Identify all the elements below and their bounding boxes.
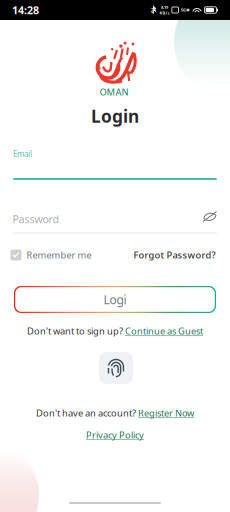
button[interactable]: Forgot Password? [133, 249, 215, 261]
button[interactable]: Continue as Guest [125, 325, 203, 337]
button[interactable]: Logi [14, 286, 216, 313]
button[interactable]: Privacy Policy [86, 429, 144, 441]
staticText: Logi [103, 291, 126, 307]
staticText: Remember me [26, 249, 91, 261]
staticText: OMAN [99, 86, 128, 98]
staticText: Continue as Guest [125, 325, 203, 337]
staticText: 14:28 [12, 3, 39, 17]
button[interactable]: Remember me [10, 249, 91, 261]
staticText: 5G [181, 7, 186, 13]
staticText: Register Now [138, 407, 194, 419]
button[interactable]: Sign in with fingerprint [99, 352, 133, 384]
staticText: Forgot Password? [133, 249, 215, 261]
staticText: Don't have an account? [36, 407, 138, 419]
staticText: 4.19 [161, 4, 168, 10]
staticText: KB/s [159, 10, 169, 15]
staticText: Login [91, 104, 139, 127]
button[interactable]: Show password [199, 208, 221, 226]
staticText: Password [12, 212, 59, 226]
staticText: Email [13, 149, 32, 159]
staticText: Don't want to sign up? [27, 325, 125, 337]
staticText: Privacy Policy [86, 429, 144, 441]
button[interactable]: Register Now [138, 407, 194, 419]
